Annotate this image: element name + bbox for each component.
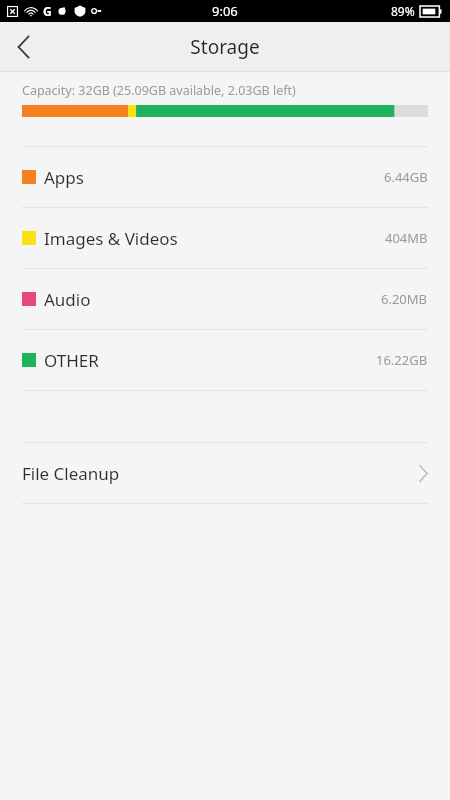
staticText: Audio — [44, 288, 91, 311]
staticText: 6.44GB — [384, 168, 428, 186]
button[interactable]: Audio — [0, 269, 450, 329]
button[interactable]: File Cleanup — [0, 443, 450, 503]
staticText: Capacity: 32GB (25.09GB available, 2.03G… — [22, 82, 296, 99]
button[interactable]: OTHER — [0, 330, 450, 390]
staticText: Apps — [44, 166, 84, 189]
staticText: 9:06 — [212, 2, 238, 20]
staticText: G — [43, 3, 52, 19]
staticText: 404MB — [385, 229, 428, 247]
staticText: OTHER — [44, 349, 99, 372]
button[interactable]: Images & Videos — [0, 208, 450, 268]
button[interactable]: Back — [0, 23, 48, 71]
staticText: 6.20MB — [381, 290, 428, 308]
staticText: File Cleanup — [22, 462, 120, 485]
staticText: 89% — [391, 3, 415, 19]
button[interactable]: Apps — [0, 147, 450, 207]
staticText: Storage — [190, 34, 260, 60]
staticText: Images & Videos — [44, 227, 178, 250]
staticText: 16.22GB — [376, 351, 428, 369]
